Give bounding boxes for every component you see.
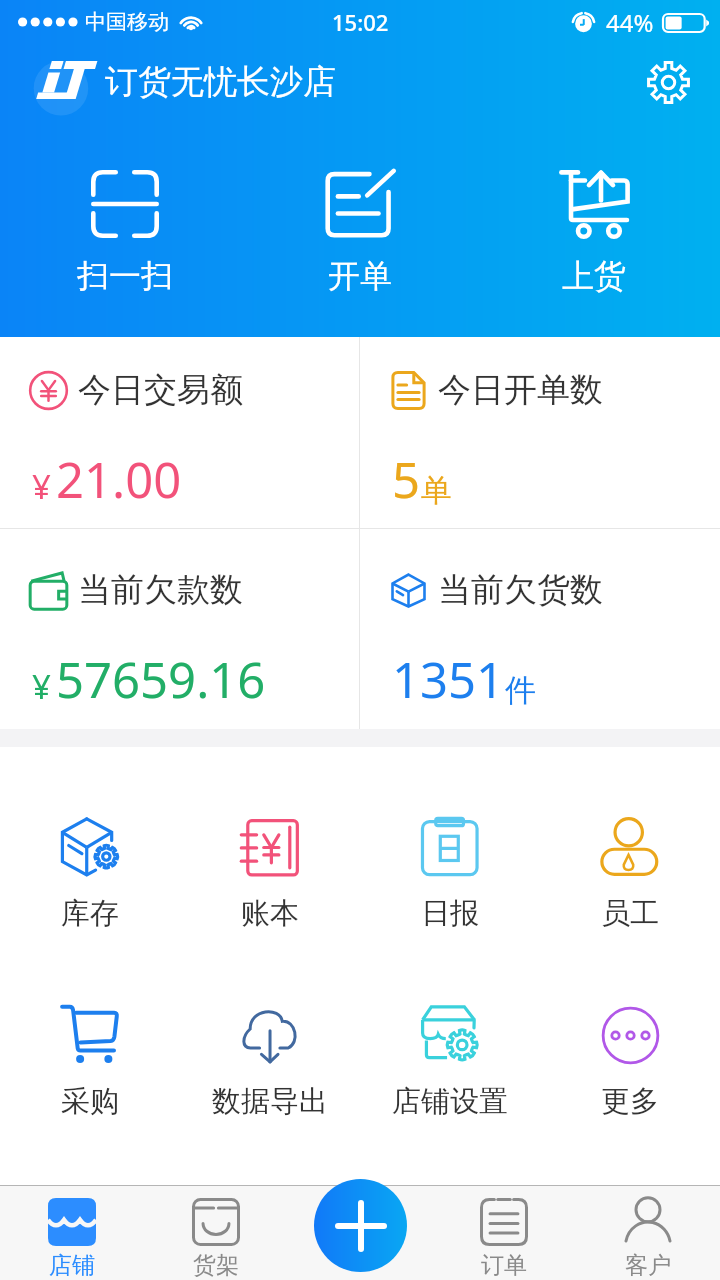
button[interactable]: 客户 — [576, 1186, 720, 1280]
staticText: 当前欠货数 — [438, 569, 603, 611]
button[interactable]: 员工 — [540, 818, 720, 932]
staticText: 客户 — [625, 1251, 671, 1280]
staticText: 扫一扫 — [77, 256, 173, 296]
button[interactable]: 账本 — [180, 818, 360, 932]
staticText: 件 — [505, 671, 536, 710]
staticText: 库存 — [61, 895, 119, 932]
staticText: ¥ — [32, 464, 51, 509]
button[interactable]: 扫一扫 — [8, 170, 242, 296]
staticText: 57659.16 — [56, 646, 266, 713]
staticText: 今日交易额 — [78, 369, 243, 411]
staticText: 货架 — [193, 1251, 239, 1280]
staticText: 日报 — [421, 895, 479, 932]
button[interactable]: 订单 — [432, 1186, 576, 1280]
staticText: 数据导出 — [212, 1083, 328, 1120]
staticText: 采购 — [61, 1083, 119, 1120]
staticText: 单 — [421, 471, 452, 510]
staticText: 5 — [392, 446, 421, 513]
staticText: 订单 — [481, 1251, 527, 1280]
staticText: 员工 — [601, 895, 659, 932]
staticText: 15:02 — [332, 7, 389, 37]
button[interactable]: Add — [314, 1179, 407, 1272]
button[interactable]: 开单 — [243, 170, 477, 296]
staticText: 更多 — [601, 1083, 659, 1120]
staticText: 1351 — [392, 646, 505, 713]
staticText: 订货无忧长沙店 — [105, 61, 336, 103]
button[interactable]: 上货 — [477, 170, 711, 296]
button[interactable]: 更多 — [540, 1006, 720, 1120]
staticText: 44% — [606, 6, 654, 39]
button[interactable]: 库存 — [0, 818, 180, 932]
button[interactable]: 店铺设置 — [360, 1006, 540, 1120]
staticText: 今日开单数 — [438, 369, 603, 411]
button[interactable]: 当前欠款数 — [0, 529, 359, 713]
staticText: 中国移动 — [85, 9, 169, 35]
button[interactable]: 货架 — [144, 1186, 288, 1280]
staticText: 开单 — [328, 256, 392, 296]
staticText: 上货 — [562, 256, 626, 296]
button[interactable]: 采购 — [0, 1006, 180, 1120]
button[interactable]: 日报 — [360, 818, 540, 932]
staticText: 21.00 — [56, 446, 182, 513]
button[interactable]: 当前欠货数 — [360, 529, 720, 713]
staticText: ¥ — [32, 664, 51, 709]
staticText: 店铺设置 — [392, 1083, 508, 1120]
staticText: 账本 — [241, 895, 299, 932]
button[interactable]: 今日交易额 — [0, 337, 359, 513]
button[interactable]: 今日开单数 — [360, 337, 720, 513]
button[interactable]: 店铺 — [0, 1186, 144, 1280]
button[interactable]: 数据导出 — [180, 1006, 360, 1120]
button[interactable]: Settings — [642, 56, 694, 108]
staticText: 当前欠款数 — [78, 569, 243, 611]
staticText: 店铺 — [49, 1251, 95, 1280]
